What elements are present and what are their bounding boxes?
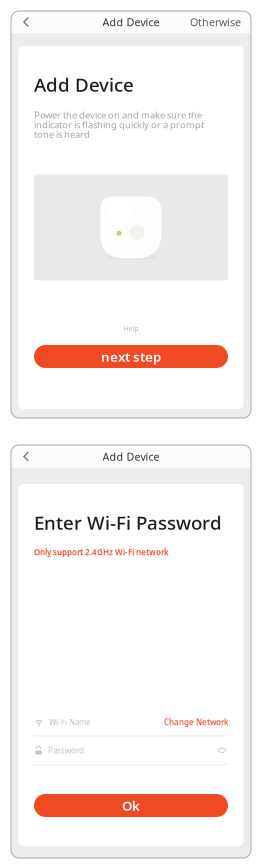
staticText: Ok [122,797,140,814]
staticText: Only support 2.4GHz Wi-Fi network [34,547,169,557]
button[interactable]: Back [17,445,35,467]
staticText: next step [101,348,161,365]
button[interactable]: Change Network [164,714,228,730]
staticText: Add Device [102,15,159,29]
button[interactable]: Otherwise [190,11,241,33]
staticText: Add Device [34,72,134,97]
button[interactable]: Show password [216,743,228,757]
staticText: Power the device on and make sure the in… [34,109,204,140]
staticText: Add Device [102,449,159,464]
staticText: Password [48,745,84,756]
staticText: Help [123,324,138,333]
button[interactable]: Help [34,324,228,333]
staticText: Change Network [164,717,228,727]
staticText: Wi-Fi Name [49,717,91,727]
button[interactable]: Ok [34,794,228,817]
staticText: Otherwise [190,15,241,29]
staticText: Enter Wi-Fi Password [34,510,222,535]
button[interactable]: Back [17,11,35,33]
button[interactable]: next step [34,345,228,368]
